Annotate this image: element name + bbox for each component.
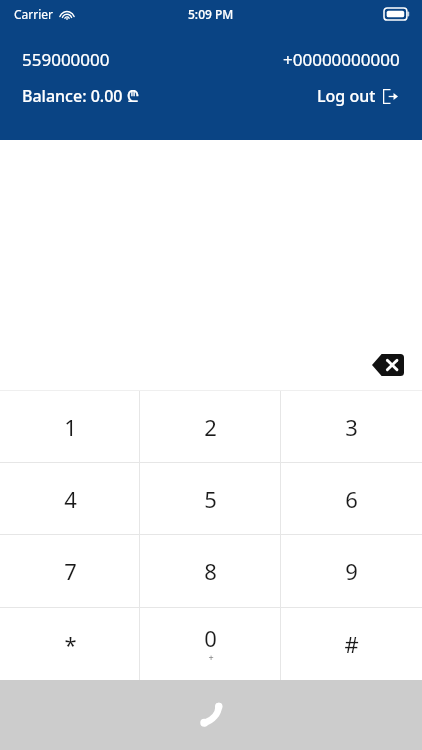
staticText: 7 bbox=[64, 556, 77, 586]
staticText: 3 bbox=[345, 412, 358, 442]
staticText: 0 bbox=[204, 623, 217, 653]
staticText: 9 bbox=[345, 556, 358, 586]
staticText: Carrier bbox=[14, 6, 54, 22]
staticText: # bbox=[344, 629, 359, 659]
staticText: 5 bbox=[204, 484, 217, 514]
button[interactable]: 0 bbox=[140, 608, 281, 680]
button[interactable]: 9 bbox=[281, 535, 422, 607]
staticText: 6 bbox=[345, 484, 358, 514]
button[interactable]: 3 bbox=[281, 391, 422, 462]
staticText: * bbox=[64, 629, 77, 659]
staticText: 2 bbox=[204, 412, 217, 442]
button[interactable]: 2 bbox=[140, 391, 281, 462]
button[interactable]: 6 bbox=[281, 463, 422, 534]
staticText: Log out bbox=[317, 85, 376, 107]
staticText: +00000000000 bbox=[283, 48, 400, 71]
button[interactable]: 5 bbox=[140, 463, 281, 534]
staticText: 4 bbox=[64, 484, 77, 514]
staticText: + bbox=[208, 651, 214, 663]
button[interactable]: 7 bbox=[0, 535, 140, 607]
button[interactable]: Call bbox=[0, 680, 422, 750]
staticText: 8 bbox=[204, 556, 217, 586]
button[interactable]: # bbox=[281, 608, 422, 680]
button[interactable]: Log out bbox=[315, 83, 400, 109]
button[interactable]: * bbox=[0, 608, 140, 680]
staticText: 559000000 bbox=[22, 48, 110, 71]
button[interactable]: 4 bbox=[0, 463, 140, 534]
staticText: 5:09 PM bbox=[188, 6, 234, 22]
staticText: 1 bbox=[64, 412, 77, 442]
button[interactable]: Backspace bbox=[370, 353, 406, 377]
staticText: Balance: 0.00 ₾ bbox=[22, 85, 140, 107]
button[interactable]: 8 bbox=[140, 535, 281, 607]
button[interactable]: 1 bbox=[0, 391, 140, 462]
